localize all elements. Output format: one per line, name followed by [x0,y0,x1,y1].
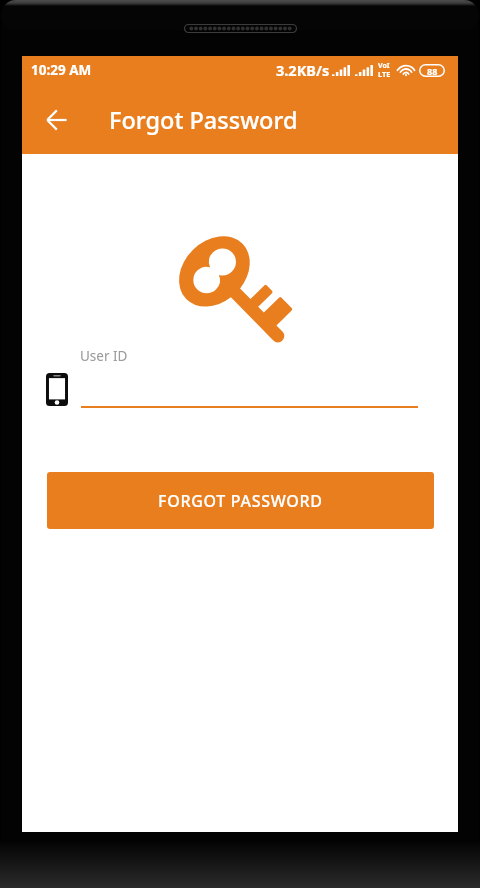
staticText: VoI [378,61,390,71]
button[interactable]: FORGOT PASSWORD [47,472,434,529]
staticText: User ID [80,347,128,365]
staticText: LTE [378,69,391,79]
staticText: FORGOT PASSWORD [158,490,323,512]
staticText: 88 [427,65,438,77]
button[interactable]: Navigate back [32,95,80,143]
staticText: 10:29 AM [31,61,92,79]
staticText: 3.2KB/s [276,60,330,80]
staticText: Forgot Password [109,104,298,136]
